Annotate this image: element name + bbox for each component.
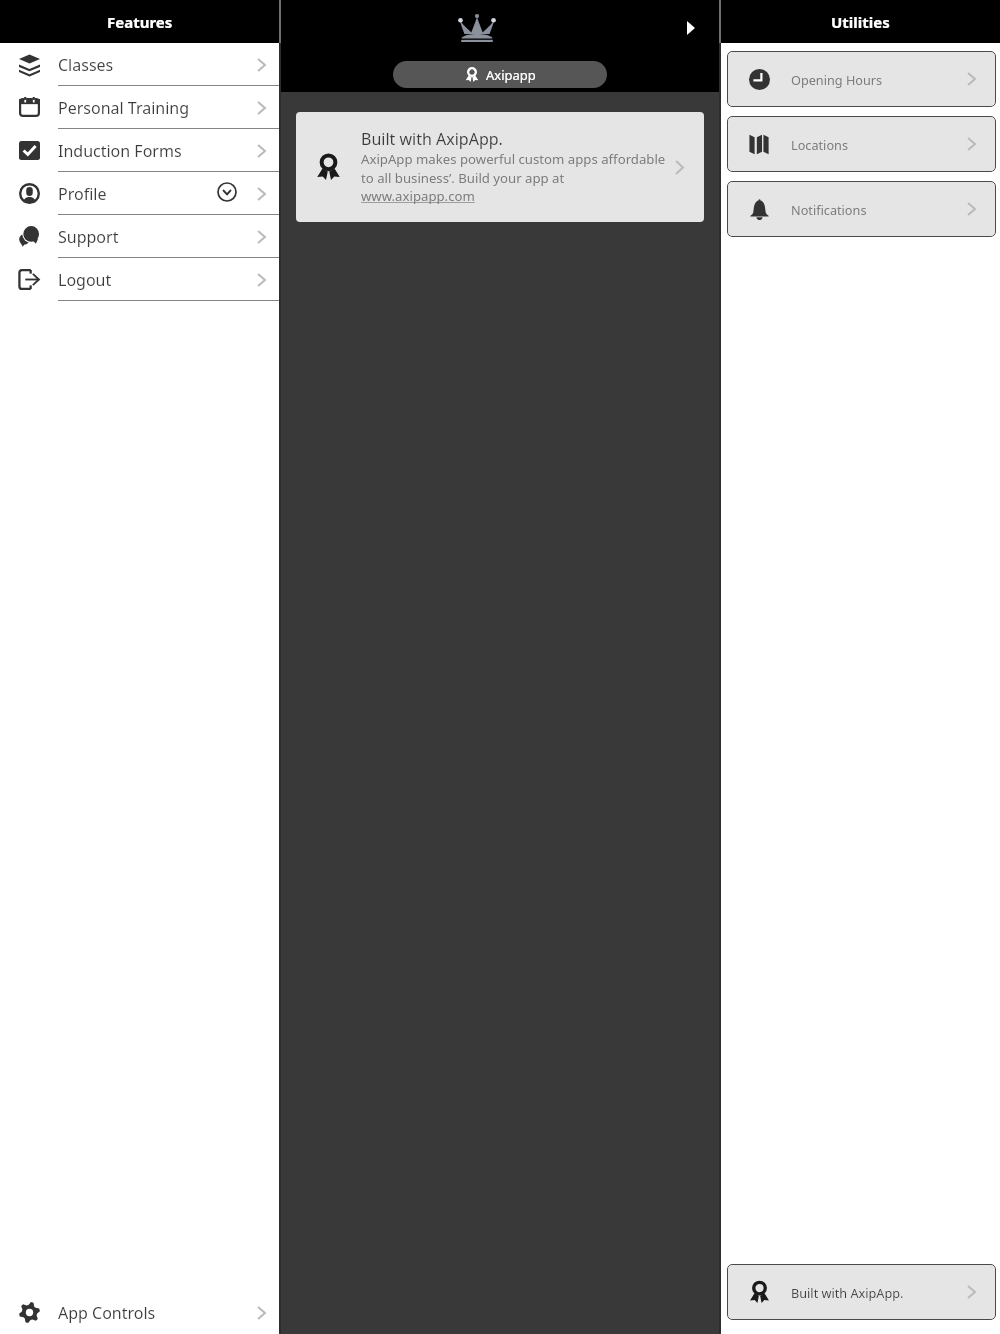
staticText: Built with AxipApp. xyxy=(791,1284,904,1301)
staticText: Profile xyxy=(58,183,107,205)
staticText: Logout xyxy=(58,269,112,291)
staticText: Opening Hours xyxy=(791,71,883,88)
staticText: Locations xyxy=(791,136,848,153)
button[interactable]: Support xyxy=(0,215,279,258)
button[interactable]: App Controls xyxy=(0,1291,279,1334)
staticText: Features xyxy=(107,12,173,32)
staticText: Induction Forms xyxy=(58,140,182,162)
button[interactable]: Logout xyxy=(0,258,279,301)
button[interactable]: Play xyxy=(678,15,704,41)
button[interactable]: Opening Hours xyxy=(727,51,996,107)
staticText: Support xyxy=(58,226,119,248)
button[interactable]: Induction Forms xyxy=(0,129,279,172)
button[interactable]: Classes xyxy=(0,43,279,86)
staticText: Classes xyxy=(58,54,114,76)
button[interactable]: Personal Training xyxy=(0,86,279,129)
button[interactable]: Axipapp xyxy=(393,61,607,88)
staticText: App Controls xyxy=(58,1302,156,1324)
button[interactable]: Notifications xyxy=(727,181,996,237)
staticText: Notifications xyxy=(791,201,867,218)
button[interactable]: Locations xyxy=(727,116,996,172)
staticText: Axipapp xyxy=(486,66,536,84)
staticText: Personal Training xyxy=(58,97,190,119)
staticText: Built with AxipApp. xyxy=(361,128,503,150)
button[interactable]: Built with AxipApp. xyxy=(727,1264,996,1320)
button[interactable]: Built with AxipApp. xyxy=(296,112,704,222)
staticText: AxipApp makes powerful custom apps affor… xyxy=(361,150,666,187)
staticText: www.axipapp.com xyxy=(361,187,475,205)
button[interactable]: Profile xyxy=(0,172,279,215)
staticText: Utilities xyxy=(831,12,890,32)
